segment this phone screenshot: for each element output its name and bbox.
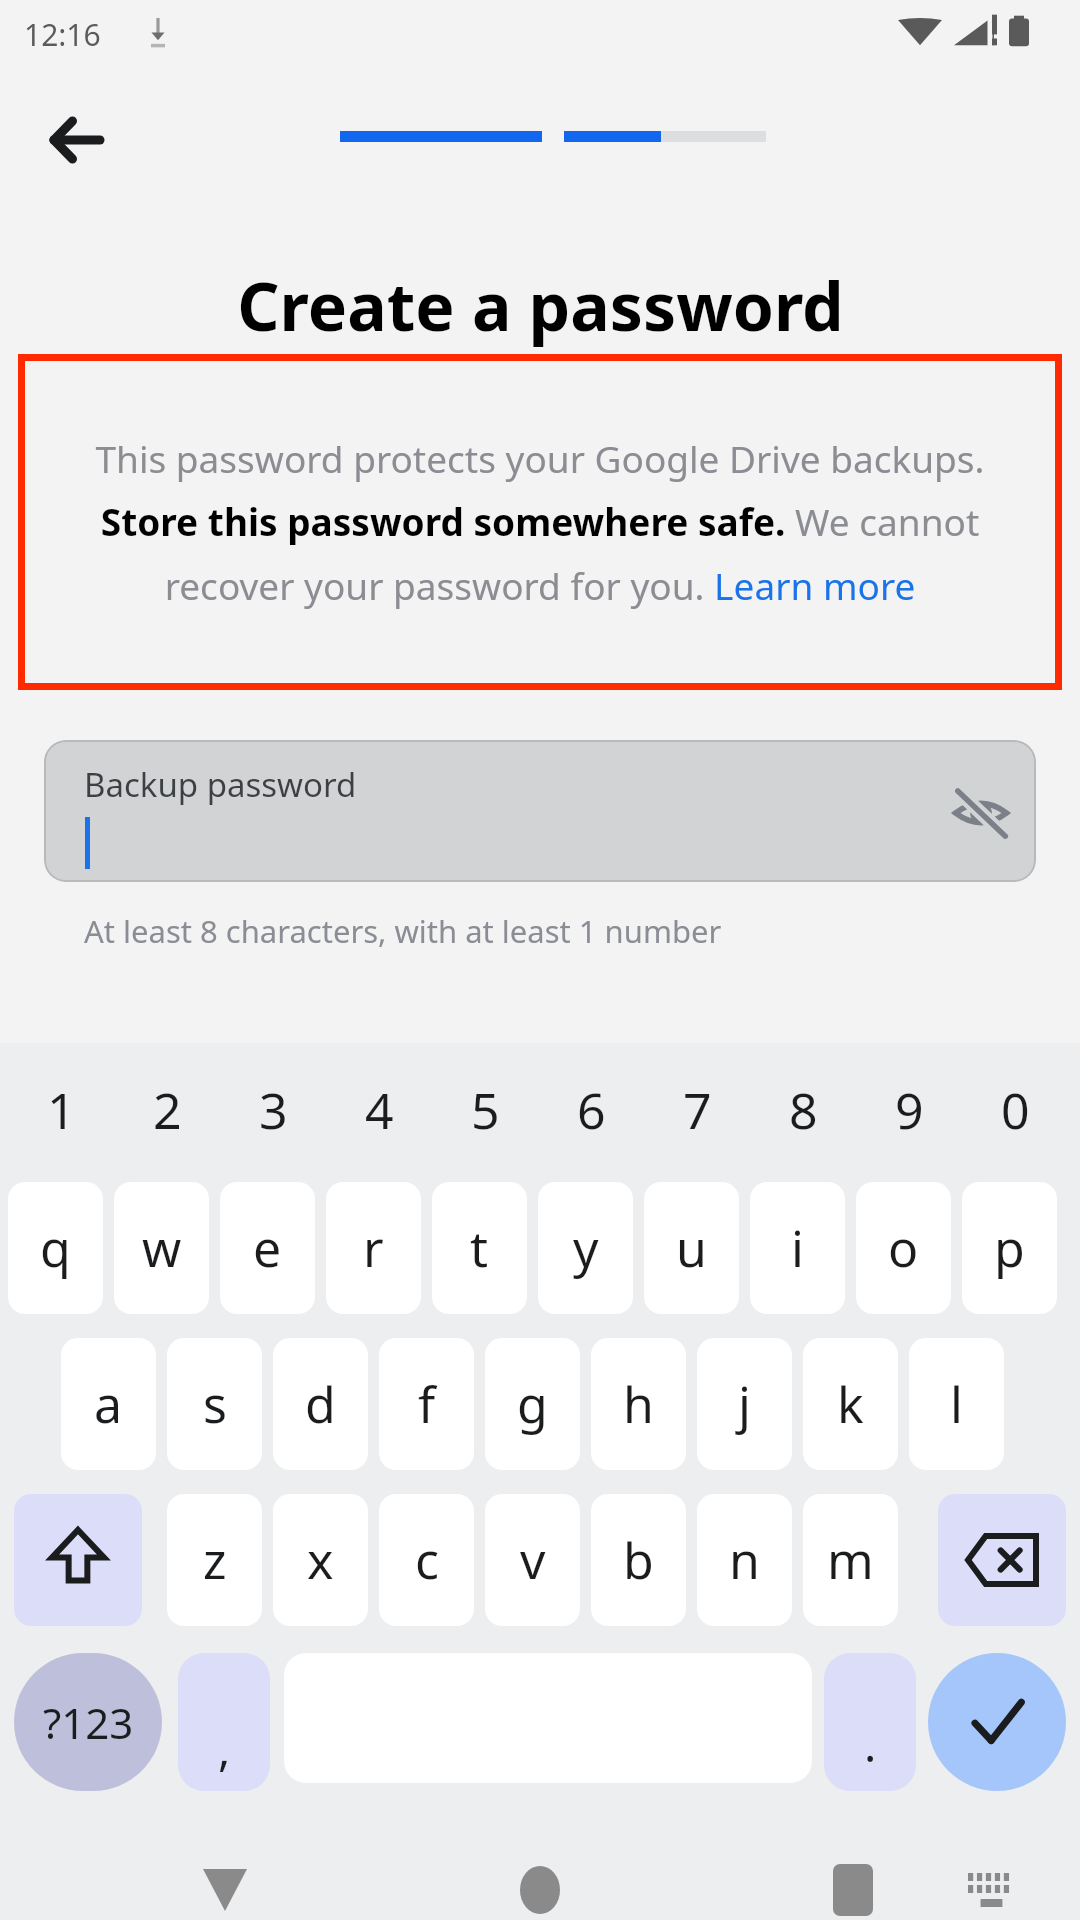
- staticText: 3: [259, 1076, 288, 1144]
- button[interactable]: c: [379, 1494, 474, 1626]
- staticText: h: [623, 1370, 654, 1438]
- staticText: l: [950, 1370, 963, 1438]
- staticText: 2: [153, 1076, 182, 1144]
- staticText: i: [791, 1214, 804, 1282]
- button[interactable]: a: [61, 1338, 156, 1470]
- button[interactable]: Shift: [14, 1494, 142, 1626]
- staticText: 1: [47, 1076, 76, 1144]
- button[interactable]: n: [697, 1494, 792, 1626]
- staticText: f: [418, 1370, 436, 1438]
- staticText: 0: [1001, 1076, 1030, 1144]
- button[interactable]: d: [273, 1338, 368, 1470]
- button[interactable]: 7: [644, 1060, 750, 1160]
- button[interactable]: l: [909, 1338, 1004, 1470]
- button[interactable]: j: [697, 1338, 792, 1470]
- button[interactable]: 4: [326, 1060, 432, 1160]
- button[interactable]: e: [220, 1182, 315, 1314]
- button[interactable]: r: [326, 1182, 421, 1314]
- button[interactable]: q: [8, 1182, 103, 1314]
- button[interactable]: Enter: [928, 1653, 1066, 1791]
- staticText: 9: [895, 1076, 924, 1144]
- button[interactable]: 8: [750, 1060, 856, 1160]
- staticText: w: [142, 1214, 182, 1282]
- staticText: ,: [218, 1717, 231, 1780]
- staticText: 7: [683, 1076, 712, 1144]
- button[interactable]: 5: [432, 1060, 538, 1160]
- staticText: At least 8 characters, with at least 1 n…: [84, 910, 722, 952]
- button[interactable]: Home: [495, 1845, 585, 1920]
- button[interactable]: Hide keyboard: [180, 1845, 270, 1920]
- staticText: .: [864, 1713, 877, 1776]
- button[interactable]: k: [803, 1338, 898, 1470]
- button[interactable]: y: [538, 1182, 633, 1314]
- button[interactable]: Show password: [944, 776, 1018, 850]
- staticText: j: [738, 1370, 751, 1438]
- button[interactable]: g: [485, 1338, 580, 1470]
- staticText: v: [520, 1526, 546, 1594]
- staticText: u: [676, 1214, 707, 1282]
- staticText: p: [994, 1214, 1025, 1282]
- button[interactable]: t: [432, 1182, 527, 1314]
- button[interactable]: Backspace: [938, 1494, 1066, 1626]
- staticText: y: [573, 1214, 599, 1282]
- staticText: t: [470, 1214, 489, 1282]
- button[interactable]: z: [167, 1494, 262, 1626]
- button[interactable]: 1: [8, 1060, 114, 1160]
- staticText: b: [623, 1526, 654, 1594]
- button[interactable]: Recents: [808, 1845, 898, 1920]
- button[interactable]: b: [591, 1494, 686, 1626]
- button[interactable]: 0: [962, 1060, 1068, 1160]
- button[interactable]: Backup password: [44, 740, 1036, 882]
- staticText: 5: [471, 1076, 500, 1144]
- button[interactable]: Switch keyboard: [955, 1853, 1029, 1920]
- staticText: k: [837, 1370, 864, 1438]
- button[interactable]: h: [591, 1338, 686, 1470]
- button[interactable]: i: [750, 1182, 845, 1314]
- button[interactable]: v: [485, 1494, 580, 1626]
- staticText: a: [94, 1370, 123, 1438]
- staticText: s: [203, 1370, 227, 1438]
- button[interactable]: ,: [178, 1653, 270, 1791]
- staticText: 4: [365, 1076, 394, 1144]
- button[interactable]: m: [803, 1494, 898, 1626]
- staticText: o: [888, 1214, 919, 1282]
- staticText: This password protects your Google Drive…: [58, 433, 1022, 611]
- button[interactable]: .: [824, 1653, 916, 1791]
- button[interactable]: 6: [538, 1060, 644, 1160]
- button[interactable]: s: [167, 1338, 262, 1470]
- staticText: Backup password: [84, 762, 357, 807]
- staticText: Create a password: [237, 260, 844, 350]
- staticText: g: [517, 1370, 548, 1438]
- button[interactable]: Back: [30, 95, 120, 185]
- staticText: r: [363, 1214, 384, 1282]
- button[interactable]: This password protects your Google Drive…: [18, 354, 1062, 690]
- staticText: q: [40, 1214, 71, 1282]
- staticText: z: [203, 1526, 227, 1594]
- button[interactable]: w: [114, 1182, 209, 1314]
- button[interactable]: x: [273, 1494, 368, 1626]
- button[interactable]: 2: [114, 1060, 220, 1160]
- button[interactable]: p: [962, 1182, 1057, 1314]
- button[interactable]: ?123: [14, 1653, 162, 1791]
- button[interactable]: f: [379, 1338, 474, 1470]
- staticText: e: [253, 1214, 282, 1282]
- button[interactable]: 9: [856, 1060, 962, 1160]
- staticText: 12:16: [24, 14, 101, 55]
- staticText: m: [827, 1526, 874, 1594]
- button[interactable]: 3: [220, 1060, 326, 1160]
- staticText: d: [305, 1370, 336, 1438]
- button[interactable]: o: [856, 1182, 951, 1314]
- staticText: c: [415, 1526, 439, 1594]
- staticText: 6: [577, 1076, 606, 1144]
- staticText: ?123: [43, 1694, 134, 1751]
- button[interactable]: u: [644, 1182, 739, 1314]
- staticText: x: [307, 1526, 334, 1594]
- staticText: n: [729, 1526, 760, 1594]
- staticText: 8: [789, 1076, 818, 1144]
